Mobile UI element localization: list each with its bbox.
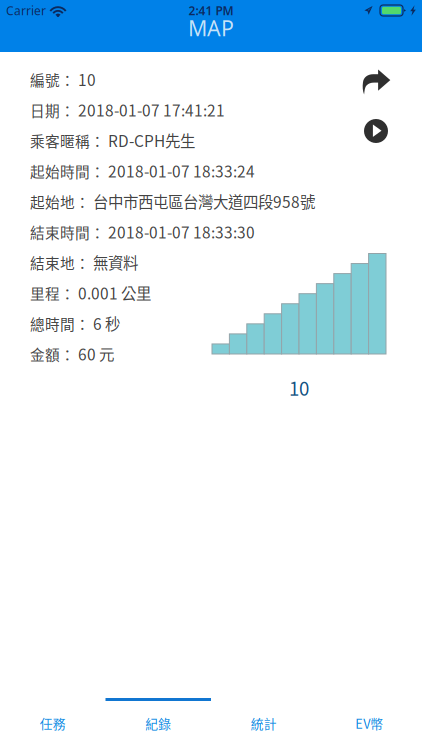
staticText: 里程： 0.001 公里 xyxy=(30,282,151,304)
button[interactable]: Play xyxy=(355,113,397,149)
staticText: 2:41 PM xyxy=(188,2,233,18)
staticText: 乘客暱稱： RD-CPH先生 xyxy=(30,129,195,151)
staticText: 任務 xyxy=(40,714,66,732)
staticText: MAP xyxy=(188,14,234,42)
staticText: 10 xyxy=(289,374,309,401)
button[interactable]: 任務 xyxy=(0,698,105,750)
button[interactable]: 統計 xyxy=(211,698,316,750)
staticText: 金額： 60 元 xyxy=(30,343,114,365)
staticText: 編號： 10 xyxy=(30,68,96,90)
staticText: 結束地： 無資料 xyxy=(30,251,138,273)
staticText: 日期： 2018-01-07 17:41:21 xyxy=(30,99,225,121)
button[interactable]: 紀錄 xyxy=(105,698,211,750)
button[interactable]: Share xyxy=(355,64,397,100)
staticText: 起始時間： 2018-01-07 18:33:24 xyxy=(30,160,255,182)
staticText: 紀錄 xyxy=(145,714,171,732)
staticText: 統計 xyxy=(251,714,277,732)
staticText: EV幣 xyxy=(355,714,383,732)
staticText: 總時間： 6 秒 xyxy=(30,312,120,334)
staticText: 起始地： 台中市西屯區台灣大道四段958號 xyxy=(30,190,315,212)
staticText: Carrier xyxy=(6,2,46,18)
button[interactable]: EV幣 xyxy=(316,698,422,750)
staticText: 結束時間： 2018-01-07 18:33:30 xyxy=(30,221,255,243)
